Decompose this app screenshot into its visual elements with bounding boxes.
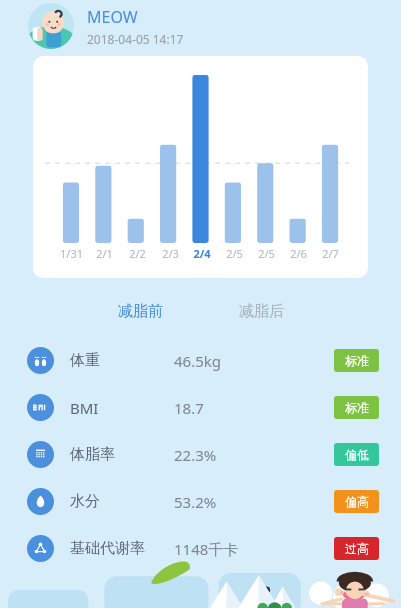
other: 基础代谢率 xyxy=(27,535,54,562)
staticText: 1148千卡 xyxy=(174,539,239,559)
other: BMI xyxy=(27,394,54,421)
staticText: 46.5kg xyxy=(174,351,221,371)
staticText: 2/2 xyxy=(129,246,146,261)
other: 体重 xyxy=(27,347,54,374)
staticText: MEOW xyxy=(87,6,138,28)
button[interactable]: Profile avatar xyxy=(0,0,401,52)
staticText: 2/6 xyxy=(290,246,307,261)
button[interactable]: 1/31 xyxy=(33,56,368,278)
button[interactable]: 体脂率 xyxy=(0,431,401,478)
staticText: 减脂前 xyxy=(118,302,163,321)
staticText: 体脂率 xyxy=(70,445,115,464)
other: Profile avatar xyxy=(28,3,74,49)
other: 体脂率 xyxy=(27,441,54,468)
staticText: 水分 xyxy=(70,492,100,511)
button[interactable]: 水分 xyxy=(0,478,401,525)
button[interactable]: BMI xyxy=(0,384,401,431)
staticText: BMI xyxy=(70,398,99,418)
staticText: 18.7 xyxy=(174,398,204,418)
staticText: 2/3 xyxy=(162,246,179,261)
staticText: 减脂后 xyxy=(239,302,284,321)
staticText: 2018-04-05 14:17 xyxy=(87,31,184,47)
staticText: 2/4 xyxy=(193,246,211,261)
staticText: 2/1 xyxy=(96,246,113,261)
staticText: 基础代谢率 xyxy=(70,539,145,558)
other: 水分 xyxy=(27,488,54,515)
button[interactable]: 标准 xyxy=(334,349,379,372)
staticText: 53.2% xyxy=(174,492,217,512)
button[interactable]: 偏高 xyxy=(334,490,379,513)
staticText: 体重 xyxy=(70,351,100,370)
staticText: 偏低 xyxy=(345,447,369,462)
button[interactable]: 偏低 xyxy=(334,443,379,466)
staticText: 2/7 xyxy=(322,246,339,261)
staticText: 22.3% xyxy=(174,445,217,465)
staticText: 2/5 xyxy=(258,246,275,261)
staticText: 过高 xyxy=(345,541,369,556)
button[interactable]: 体重 xyxy=(0,337,401,384)
staticText: 偏高 xyxy=(345,494,369,509)
button[interactable]: 过高 xyxy=(334,537,379,560)
staticText: 2/5 xyxy=(226,246,243,261)
button[interactable]: 减脂后 xyxy=(239,302,284,321)
staticText: 1/31 xyxy=(60,246,83,261)
staticText: 标准 xyxy=(345,400,369,415)
staticText: 标准 xyxy=(345,353,369,368)
button[interactable]: 标准 xyxy=(334,396,379,419)
button[interactable]: 减脂前 xyxy=(118,302,163,321)
button[interactable]: 基础代谢率 xyxy=(0,525,401,572)
